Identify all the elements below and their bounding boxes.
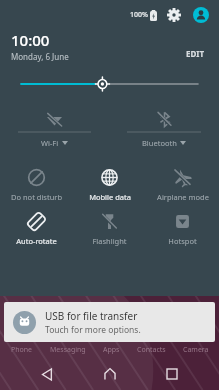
staticText: Auto-rotate [16,236,57,246]
button[interactable]: 10:00 [11,30,182,62]
staticText: Messaging [50,345,86,355]
staticText: 10:00 [11,30,50,50]
staticText: Wi-Fi [41,138,59,148]
button[interactable]: USB for file transfer [4,302,215,342]
button[interactable]: Recent apps [157,359,187,389]
staticText: Mobile data [89,192,131,202]
button[interactable]: Airplane mode [146,168,219,202]
button[interactable]: Mobile data [73,168,146,202]
staticText: Do not disturb [11,192,62,202]
button[interactable]: Settings [166,7,182,23]
staticText: USB for file transfer [45,309,138,323]
button[interactable]: Home [95,359,125,389]
button[interactable]: Brightness [0,62,219,106]
staticText: Bluetooth [142,138,177,148]
staticText: Apps [103,345,120,355]
staticText: Hotspot [168,236,197,246]
button[interactable]: Flashlight [73,212,146,246]
staticText: Airplane mode [157,192,209,202]
button[interactable]: Bluetooth [109,106,219,162]
button[interactable]: Hotspot [146,212,219,246]
staticText: Monday, 6 June [11,51,69,62]
staticText: EDIT [186,48,205,59]
staticText: Contacts [137,345,166,355]
staticText: Touch for more options. [45,324,141,336]
button[interactable]: Wi-Fi [0,106,109,162]
staticText: Camera [183,345,209,355]
button[interactable]: EDIT [182,45,209,62]
button[interactable]: User profile [192,6,210,24]
staticText: Flashlight [92,236,127,246]
button[interactable]: Do not disturb [0,168,73,202]
button[interactable]: Back [32,359,62,389]
staticText: 100% [130,10,148,20]
staticText: Phone [11,345,33,355]
button[interactable]: Auto-rotate [0,212,73,246]
